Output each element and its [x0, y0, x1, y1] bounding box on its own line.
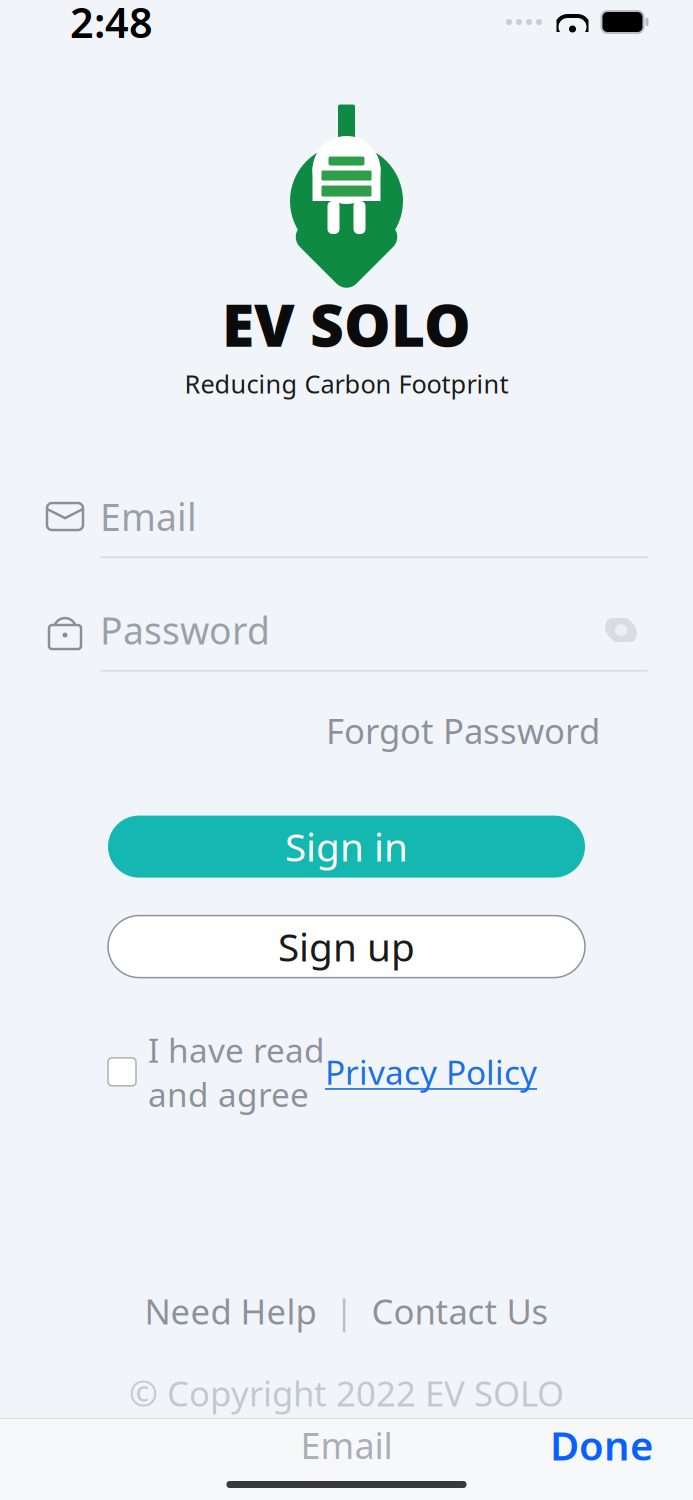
staticText: Contact Us — [371, 1288, 548, 1334]
staticText: Sign in — [285, 821, 408, 872]
staticText: Email — [100, 492, 197, 541]
staticText: Password — [100, 605, 270, 655]
staticText: Sign up — [278, 921, 415, 972]
button[interactable]: Forgot Password — [326, 701, 600, 759]
staticText: © Copyright 2022 EV SOLO — [129, 1370, 564, 1416]
staticText: 2:48 — [70, 0, 153, 49]
staticText: | — [334, 1288, 353, 1334]
staticText: Forgot Password — [326, 707, 600, 753]
button[interactable]: Done — [550, 1418, 653, 1471]
staticText: Email — [300, 1421, 392, 1469]
button[interactable]: Privacy Policy — [325, 1050, 537, 1094]
staticText: Privacy Policy — [325, 1050, 537, 1094]
staticText: Need Help — [144, 1288, 316, 1334]
staticText: Reducing Carbon Footprint — [184, 367, 508, 400]
button[interactable]: Show password — [594, 607, 648, 653]
button[interactable]: Agree to Privacy Policy — [108, 1058, 136, 1086]
button[interactable]: Sign up — [108, 916, 585, 978]
button[interactable]: Need Help — [144, 1288, 316, 1334]
staticText: Done — [550, 1418, 653, 1471]
staticText: EV SOLO — [222, 285, 471, 363]
button[interactable]: Sign in — [108, 816, 585, 878]
button[interactable]: Contact Us — [371, 1288, 548, 1334]
staticText: I have read and agree — [148, 1028, 325, 1116]
